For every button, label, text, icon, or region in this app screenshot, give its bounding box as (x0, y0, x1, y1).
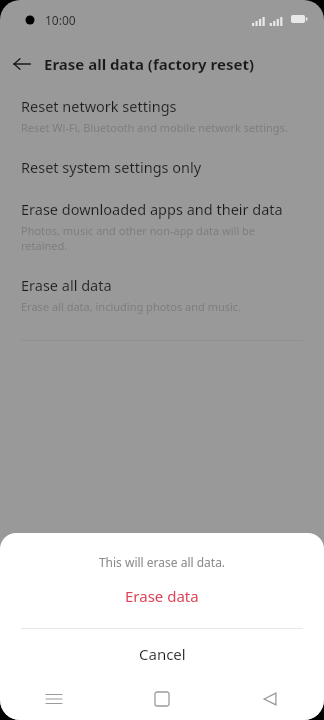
staticText: Erase all data, including photos and mus… (21, 299, 242, 314)
staticText: Erase downloaded apps and their data (21, 199, 283, 219)
staticText: Cancel (139, 644, 186, 664)
button[interactable]: Cancel (0, 629, 324, 679)
staticText: Erase all data (21, 275, 112, 295)
staticText: Reset Wi-Fi, Bluetooth and mobile networ… (21, 120, 288, 135)
button[interactable]: Reset system settings only (0, 157, 324, 177)
staticText: Photos, music and other non-app data wil… (21, 223, 303, 253)
button[interactable]: Back (216, 679, 324, 719)
button[interactable]: Home (108, 679, 216, 719)
button[interactable]: Erase all data (0, 275, 324, 314)
button[interactable]: Recents (0, 679, 108, 719)
staticText: Reset system settings only (21, 157, 202, 177)
button[interactable]: Back (0, 44, 44, 84)
staticText: Erase data (125, 586, 199, 606)
button[interactable]: Erase downloaded apps and their data (0, 199, 324, 253)
button[interactable]: Erase data (0, 570, 324, 622)
staticText: 10:00 (45, 12, 76, 28)
button[interactable]: Reset network settings (0, 96, 324, 135)
staticText: Erase all data (factory reset) (44, 54, 254, 74)
staticText: This will erase all data. (0, 554, 324, 570)
staticText: Reset network settings (21, 96, 177, 116)
